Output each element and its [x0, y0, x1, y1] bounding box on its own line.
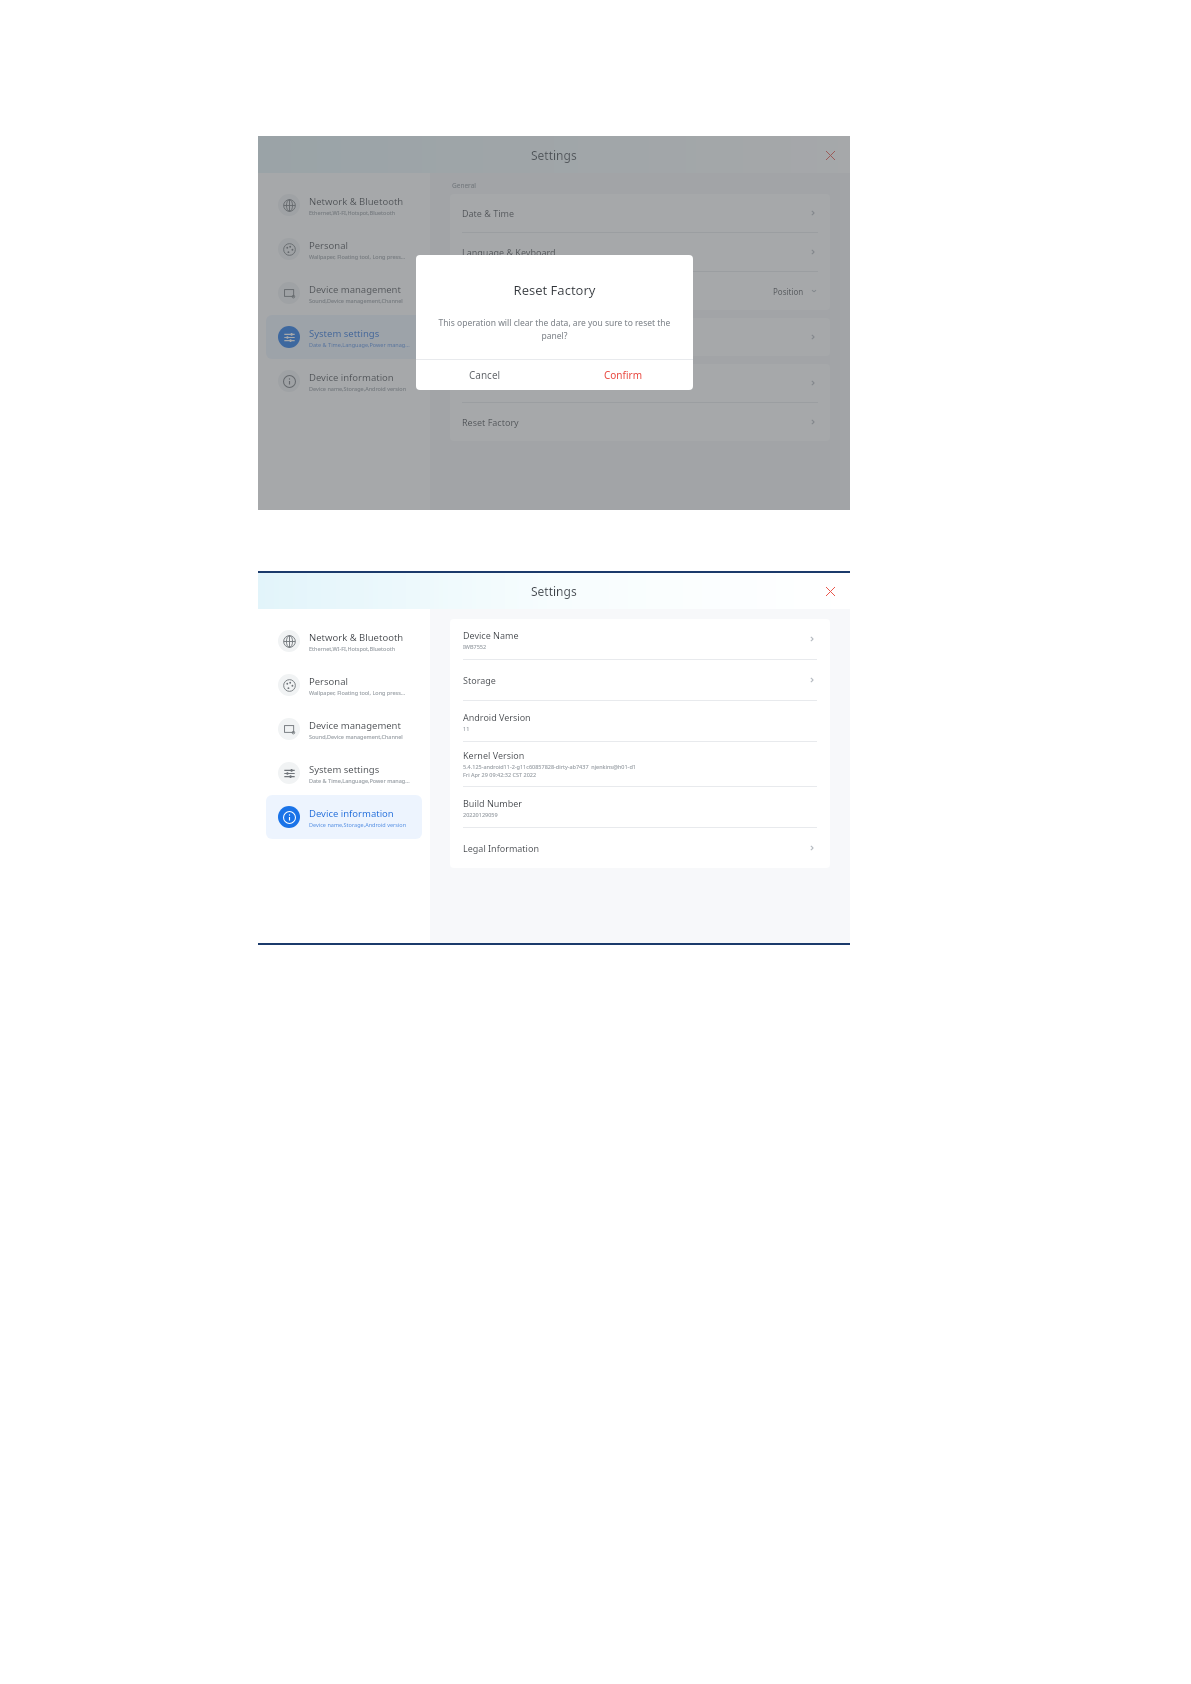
staticText: Personal	[309, 675, 348, 688]
staticText: Personal	[309, 239, 348, 252]
button[interactable]: Reset Factory	[450, 403, 830, 441]
button[interactable]: Language & Keyboard	[450, 233, 830, 271]
button[interactable]: Security	[450, 318, 830, 356]
staticText: Language & Keyboard	[462, 246, 556, 258]
staticText: 20220129059	[463, 811, 498, 818]
staticText: Position	[773, 286, 804, 297]
staticText: Network & Bluetooth	[309, 195, 404, 208]
button[interactable]: Device management	[266, 271, 422, 315]
staticText: Settings	[531, 147, 577, 163]
staticText: 11	[463, 725, 470, 732]
button[interactable]: Personal	[266, 663, 422, 707]
staticText: 5.4.125-android11-2-g11c60857828-dirty-a…	[463, 763, 636, 779]
staticText: Storage	[463, 674, 496, 686]
staticText: Legal Information	[463, 842, 539, 854]
staticText: Cancel	[469, 368, 501, 382]
staticText: Date & Time,Language,Power manag...	[309, 341, 410, 348]
staticText: Ethernet,WI-FI,Hotspot,Bluetooth	[309, 645, 396, 652]
button[interactable]: Kernel Version	[450, 742, 830, 786]
button[interactable]: Confirm	[554, 360, 693, 390]
staticText: Ethernet,WI-FI,Hotspot,Bluetooth	[309, 209, 396, 216]
staticText: Settings	[531, 583, 577, 599]
staticText: Device information	[309, 807, 394, 820]
button[interactable]: Network & Bluetooth	[266, 619, 422, 663]
staticText: Wallpaper, Floating tool, Long press...	[309, 253, 406, 260]
staticText: System settings	[309, 327, 380, 340]
staticText: General	[452, 181, 476, 190]
staticText: Build Number	[463, 797, 523, 809]
button[interactable]: Cancel	[416, 360, 554, 390]
button[interactable]: Storage	[450, 660, 830, 700]
button[interactable]: Device Name	[450, 619, 830, 659]
staticText: System Update	[462, 377, 526, 389]
button[interactable]: Network & Bluetooth	[266, 183, 422, 227]
staticText: Date & Time	[462, 207, 515, 219]
button[interactable]: Legal Information	[450, 828, 830, 868]
staticText: Network & Bluetooth	[309, 631, 404, 644]
staticText: Kernel Version	[463, 749, 525, 761]
button[interactable]: Close	[820, 145, 840, 165]
button[interactable]: Date & Time	[450, 194, 830, 232]
staticText: Sound,Device management,Channel	[309, 733, 403, 740]
button[interactable]: Device information	[266, 359, 422, 403]
button[interactable]: Close	[820, 581, 840, 601]
button[interactable]: Power Management	[450, 272, 830, 310]
staticText: Sound,Device management,Channel	[309, 297, 403, 304]
button[interactable]: Device information	[266, 795, 422, 839]
button[interactable]: Android Version	[450, 701, 830, 741]
staticText: Device management	[309, 283, 401, 296]
staticText: Device Name	[463, 629, 519, 641]
button[interactable]: System Update	[450, 364, 830, 402]
staticText: Reset Factory	[416, 281, 693, 299]
staticText: Android Version	[463, 711, 531, 723]
button[interactable]: System settings	[266, 315, 422, 359]
staticText: Date & Time,Language,Power manag...	[309, 777, 410, 784]
staticText: Reset Factory	[462, 416, 519, 428]
button[interactable]: Device management	[266, 707, 422, 751]
staticText: Device name,Storage,Android version	[309, 385, 407, 392]
staticText: Device information	[309, 371, 394, 384]
staticText: IWB7552	[463, 643, 487, 650]
staticText: Confirm	[604, 368, 643, 382]
button[interactable]: System settings	[266, 751, 422, 795]
staticText: Device management	[309, 719, 401, 732]
staticText: This operation will clear the data, are …	[436, 317, 673, 342]
button[interactable]: Build Number	[450, 787, 830, 827]
button[interactable]: Personal	[266, 227, 422, 271]
staticText: System settings	[309, 763, 380, 776]
staticText: Power Management	[462, 285, 548, 297]
staticText: Wallpaper, Floating tool, Long press...	[309, 689, 406, 696]
staticText: Device name,Storage,Android version	[309, 821, 407, 828]
